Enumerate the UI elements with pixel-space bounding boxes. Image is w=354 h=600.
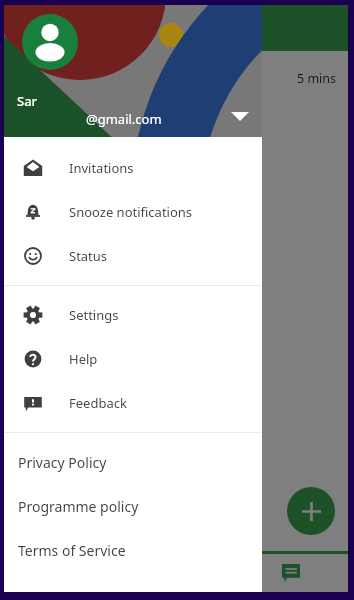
staticText: Settings — [69, 306, 119, 324]
button[interactable]: Account — [22, 14, 78, 70]
button[interactable]: Help — [4, 337, 262, 381]
button[interactable]: Calls — [118, 554, 233, 592]
staticText: Snooze notifications — [69, 203, 193, 221]
button[interactable]: Settings — [4, 293, 262, 337]
button[interactable]: Programme policy — [4, 484, 262, 528]
staticText: 5 mins — [297, 70, 337, 87]
staticText: Sar — [17, 92, 38, 110]
staticText: Invitations — [69, 159, 134, 177]
button[interactable]: Terms of Service — [4, 528, 262, 572]
button[interactable]: Switch account — [227, 103, 253, 129]
button[interactable]: Feedback — [4, 381, 262, 425]
button[interactable]: Snooze notifications — [4, 190, 262, 234]
staticText: @gmail.com — [86, 110, 162, 128]
staticText: Privacy Policy — [18, 453, 107, 472]
staticText: Help — [69, 350, 98, 368]
staticText: Programme policy — [18, 497, 139, 516]
staticText: Terms of Service — [18, 541, 126, 560]
button[interactable]: Invitations — [4, 146, 262, 190]
staticText: Feedback — [69, 394, 127, 412]
button[interactable]: Privacy Policy — [4, 440, 262, 484]
button[interactable]: Chats — [233, 554, 348, 592]
button[interactable]: Meetings — [4, 554, 118, 592]
button[interactable]: Status — [4, 234, 262, 278]
staticText: Status — [69, 247, 108, 265]
button[interactable]: Create — [287, 487, 335, 535]
